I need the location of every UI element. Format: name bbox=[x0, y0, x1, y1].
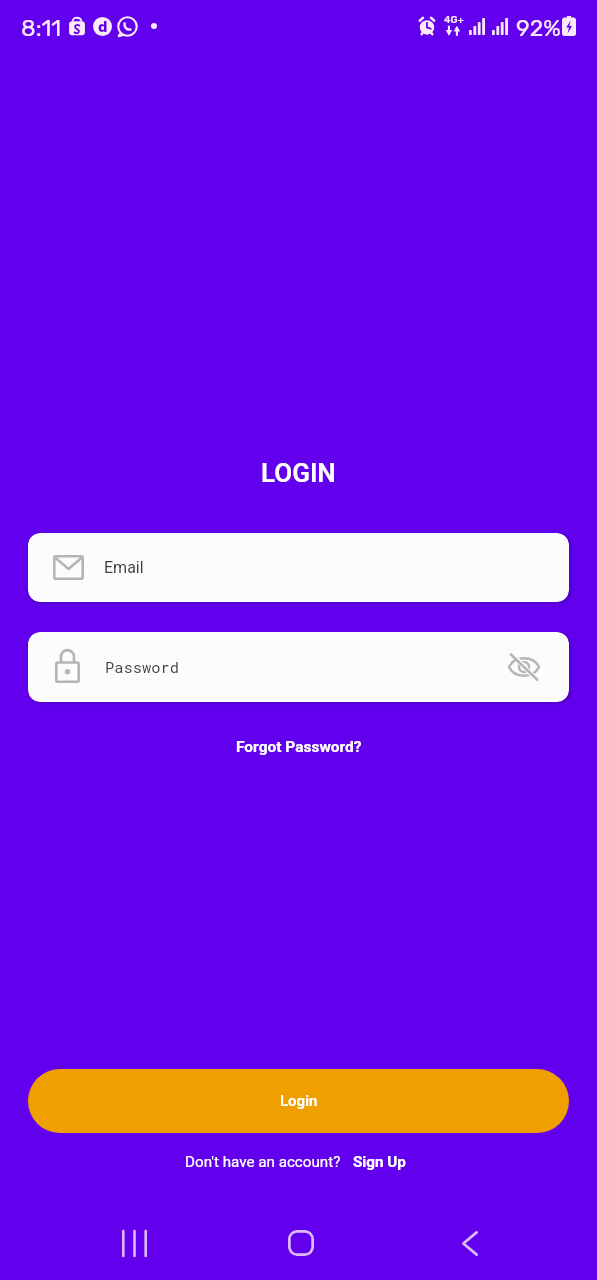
staticText: Email bbox=[104, 558, 144, 577]
button[interactable]: Email bbox=[28, 533, 569, 602]
button[interactable]: Password bbox=[28, 632, 569, 702]
staticText: Login bbox=[280, 1092, 318, 1110]
staticText: Password bbox=[105, 657, 179, 677]
staticText: 92% bbox=[516, 14, 561, 41]
staticText: 8:11 bbox=[21, 14, 62, 41]
staticText: Don't have an account? bbox=[185, 1153, 341, 1171]
button[interactable]: Login bbox=[28, 1069, 569, 1133]
button[interactable]: Sign Up bbox=[353, 1153, 406, 1171]
staticText: d bbox=[98, 18, 108, 36]
staticText: 4G+ bbox=[444, 14, 464, 26]
button[interactable]: Back bbox=[430, 1206, 510, 1280]
button[interactable]: Show password bbox=[498, 641, 550, 693]
staticText: Forgot Password? bbox=[236, 738, 362, 756]
staticText: LOGIN bbox=[261, 458, 336, 488]
button[interactable]: Recent apps bbox=[94, 1206, 174, 1280]
button[interactable]: Forgot Password? bbox=[230, 736, 368, 758]
staticText: Sign Up bbox=[353, 1153, 406, 1171]
button[interactable]: Home bbox=[261, 1206, 341, 1280]
